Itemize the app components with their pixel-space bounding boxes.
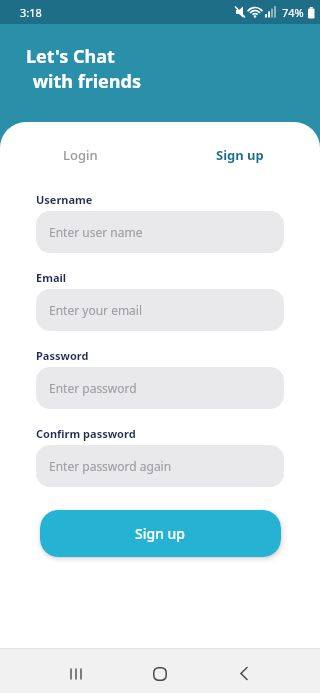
staticText: Confirm password (36, 426, 136, 441)
button[interactable]: Sign up (160, 146, 320, 164)
staticText: Let's Chat (26, 44, 115, 69)
staticText: Password (36, 348, 89, 363)
staticText: Enter password again (49, 458, 172, 474)
button[interactable]: Enter user name (36, 211, 284, 253)
staticText: Sign up (135, 524, 186, 543)
staticText: Enter user name (49, 224, 143, 240)
button[interactable] (216, 651, 272, 693)
staticText: Enter password (49, 380, 137, 396)
button[interactable] (132, 651, 188, 693)
staticText: Username (36, 192, 93, 207)
button[interactable]: Enter password again (36, 445, 284, 487)
button[interactable]: Login (0, 146, 160, 164)
staticText: 74% (282, 5, 304, 20)
button[interactable]: Enter password (36, 367, 284, 409)
staticText: with friends (28, 69, 141, 94)
staticText: Enter your email (49, 302, 143, 318)
staticText: Login (63, 146, 98, 164)
staticText: Email (36, 270, 67, 285)
staticText: Sign up (216, 146, 264, 164)
staticText: 3:18 (20, 5, 42, 20)
button[interactable] (48, 651, 104, 693)
button[interactable]: Enter your email (36, 289, 284, 331)
button[interactable]: Sign up (40, 510, 281, 557)
